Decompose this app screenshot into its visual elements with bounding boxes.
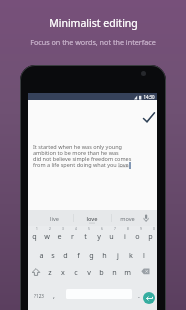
staticText: b bbox=[99, 267, 104, 277]
staticText: x bbox=[61, 267, 65, 277]
button[interactable]: live bbox=[48, 215, 61, 223]
button[interactable] bbox=[28, 262, 43, 281]
button[interactable]: w bbox=[40, 226, 53, 245]
staticText: g bbox=[89, 250, 94, 260]
button[interactable]: t bbox=[79, 226, 92, 245]
staticText: 14:30 bbox=[143, 94, 155, 100]
staticText: d bbox=[63, 250, 68, 260]
staticText: s bbox=[51, 250, 55, 260]
button[interactable]: move bbox=[120, 215, 135, 223]
button[interactable]: f bbox=[72, 245, 85, 264]
staticText: 5 bbox=[88, 227, 90, 231]
staticText: 9 bbox=[140, 227, 142, 231]
staticText: Focus on the words, not the interface bbox=[30, 37, 156, 47]
staticText: 7 bbox=[114, 227, 116, 231]
button[interactable]: p bbox=[144, 226, 157, 245]
button[interactable]: i bbox=[118, 226, 131, 245]
button[interactable]: y bbox=[92, 226, 105, 245]
staticText: e bbox=[57, 231, 62, 241]
staticText: k bbox=[129, 250, 133, 260]
button[interactable]: e bbox=[53, 226, 66, 245]
staticText: j bbox=[117, 250, 119, 260]
button[interactable]: g bbox=[85, 245, 98, 264]
staticText: z bbox=[48, 267, 52, 277]
button[interactable]: v bbox=[82, 262, 95, 281]
staticText: c bbox=[74, 267, 78, 277]
button[interactable]: love bbox=[85, 215, 99, 223]
button[interactable]: n bbox=[108, 262, 121, 281]
staticText: 1 bbox=[36, 227, 38, 231]
button[interactable]: x bbox=[56, 262, 69, 281]
button[interactable]: h bbox=[98, 245, 111, 264]
button[interactable]: , bbox=[48, 285, 60, 306]
button[interactable]: . bbox=[134, 285, 144, 306]
button[interactable]: j bbox=[111, 245, 124, 264]
button[interactable]: b bbox=[95, 262, 108, 281]
button[interactable] bbox=[143, 292, 155, 304]
staticText: 2 bbox=[49, 227, 51, 231]
button[interactable]: m bbox=[121, 262, 134, 281]
button[interactable] bbox=[142, 214, 150, 223]
staticText: n bbox=[112, 267, 117, 277]
button[interactable]: d bbox=[59, 245, 72, 264]
staticText: q bbox=[32, 231, 37, 241]
staticText: 6 bbox=[101, 227, 103, 231]
staticText: l bbox=[143, 250, 145, 260]
staticText: ?123 bbox=[34, 293, 44, 299]
button[interactable]: a bbox=[35, 245, 47, 264]
staticText: It started when he was only young ambiti… bbox=[33, 143, 132, 168]
button[interactable]: s bbox=[47, 245, 59, 264]
staticText: t bbox=[84, 231, 87, 241]
staticText: i bbox=[124, 231, 126, 241]
button[interactable]: Minimalist editing bbox=[49, 16, 138, 30]
staticText: u bbox=[109, 231, 114, 241]
button[interactable]: k bbox=[124, 245, 137, 264]
staticText: v bbox=[87, 267, 91, 277]
button[interactable] bbox=[142, 111, 156, 124]
button[interactable] bbox=[134, 262, 157, 281]
staticText: 4 bbox=[75, 227, 77, 231]
staticText: 8 bbox=[127, 227, 129, 231]
button[interactable]: r bbox=[66, 226, 79, 245]
button[interactable]: o bbox=[131, 226, 144, 245]
staticText: r bbox=[71, 231, 74, 241]
staticText: p bbox=[148, 231, 153, 241]
button[interactable]: u bbox=[105, 226, 118, 245]
staticText: 0 bbox=[153, 227, 155, 231]
button[interactable]: ?123 bbox=[30, 285, 47, 306]
staticText: , bbox=[53, 291, 55, 301]
button[interactable]: l bbox=[137, 245, 150, 264]
button[interactable]: z bbox=[43, 262, 56, 281]
staticText: 3 bbox=[62, 227, 64, 231]
staticText: a bbox=[39, 250, 44, 260]
staticText: m bbox=[124, 267, 131, 277]
staticText: o bbox=[135, 231, 140, 241]
staticText: . bbox=[138, 291, 140, 301]
staticText: f bbox=[77, 250, 80, 260]
staticText: w bbox=[44, 231, 50, 241]
button[interactable]: c bbox=[69, 262, 82, 281]
button[interactable]: q bbox=[28, 226, 40, 245]
staticText: h bbox=[102, 250, 107, 260]
staticText: y bbox=[97, 231, 101, 241]
